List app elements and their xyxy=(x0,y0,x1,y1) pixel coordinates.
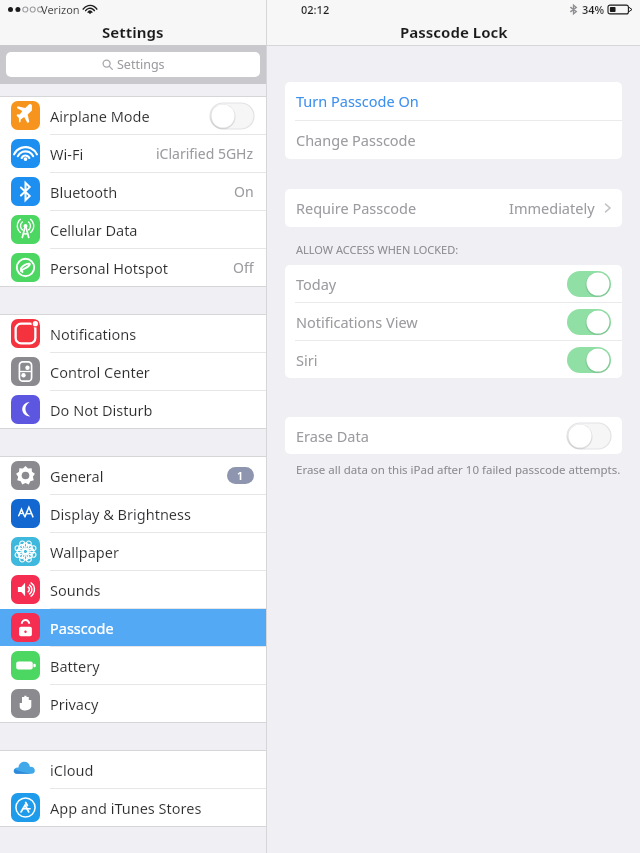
button[interactable]: Turn Passcode On xyxy=(285,82,622,120)
button[interactable]: Sounds xyxy=(0,571,266,608)
button[interactable]: Bluetooth xyxy=(0,173,266,210)
button[interactable]: Passcode xyxy=(0,609,266,646)
button[interactable]: Disabled xyxy=(210,103,254,129)
staticText: 34% xyxy=(582,2,605,17)
staticText: Settings xyxy=(102,22,164,42)
staticText: Cellular Data xyxy=(50,220,138,240)
button[interactable]: Privacy xyxy=(0,685,266,722)
staticText: Battery xyxy=(50,656,100,676)
staticText: Do Not Disturb xyxy=(50,400,153,420)
staticText: Verizon xyxy=(41,2,80,17)
staticText: Change Passcode xyxy=(296,130,416,150)
button[interactable]: Enabled xyxy=(567,309,611,335)
staticText: Notifications xyxy=(50,324,137,344)
staticText: Off xyxy=(233,258,254,277)
staticText: Passcode Lock xyxy=(400,22,508,42)
staticText: 1 xyxy=(237,468,244,483)
button[interactable]: Siri xyxy=(285,341,622,378)
staticText: Siri xyxy=(296,350,318,370)
button[interactable]: Cellular Data xyxy=(0,211,266,248)
staticText: Display & Brightness xyxy=(50,504,191,524)
button[interactable]: App and iTunes Stores xyxy=(0,789,266,826)
button[interactable]: Battery xyxy=(0,647,266,684)
staticText: Privacy xyxy=(50,694,99,714)
button[interactable]: Wi-Fi xyxy=(0,135,266,172)
staticText: Wi-Fi xyxy=(50,144,84,164)
staticText: Airplane Mode xyxy=(50,106,150,126)
button[interactable]: Change Passcode xyxy=(285,121,622,159)
button[interactable]: Display & Brightness xyxy=(0,495,266,532)
button[interactable]: Notifications View xyxy=(285,303,622,340)
staticText: ALLOW ACCESS WHEN LOCKED: xyxy=(296,242,459,257)
button[interactable]: Airplane Mode xyxy=(0,97,266,134)
staticText: Erase Data xyxy=(296,426,369,446)
button[interactable]: Personal Hotspot xyxy=(0,249,266,286)
staticText: Immediately xyxy=(509,198,595,218)
button[interactable]: Control Center xyxy=(0,353,266,390)
button[interactable]: Wallpaper xyxy=(0,533,266,570)
button[interactable]: General xyxy=(0,457,266,494)
button[interactable]: Settings xyxy=(6,52,260,77)
staticText: Wallpaper xyxy=(50,542,119,562)
staticText: Today xyxy=(296,274,337,294)
button[interactable]: Enabled xyxy=(567,347,611,373)
staticText: Passcode xyxy=(50,618,114,638)
staticText: 02:12 xyxy=(301,2,330,17)
button[interactable]: iCloud xyxy=(0,751,266,788)
staticText: Notifications View xyxy=(296,312,418,332)
staticText: Turn Passcode On xyxy=(296,91,419,111)
staticText: General xyxy=(50,466,104,486)
button[interactable]: Do Not Disturb xyxy=(0,391,266,428)
button[interactable]: Notifications xyxy=(0,315,266,352)
staticText: Require Passcode xyxy=(296,198,417,218)
staticText: Sounds xyxy=(50,580,101,600)
staticText: iClarified 5GHz xyxy=(156,144,254,163)
button[interactable]: Require Passcode xyxy=(285,189,622,227)
staticText: Personal Hotspot xyxy=(50,258,168,278)
button[interactable]: Disabled xyxy=(567,423,611,449)
button[interactable]: Erase Data xyxy=(285,417,622,454)
staticText: Erase all data on this iPad after 10 fai… xyxy=(296,462,621,478)
staticText: Control Center xyxy=(50,362,150,382)
button[interactable]: Today xyxy=(285,265,622,302)
staticText: Bluetooth xyxy=(50,182,118,202)
staticText: On xyxy=(234,182,254,201)
button[interactable]: Enabled xyxy=(567,271,611,297)
staticText: App and iTunes Stores xyxy=(50,798,202,818)
staticText: Settings xyxy=(117,56,165,73)
staticText: iCloud xyxy=(50,760,94,780)
